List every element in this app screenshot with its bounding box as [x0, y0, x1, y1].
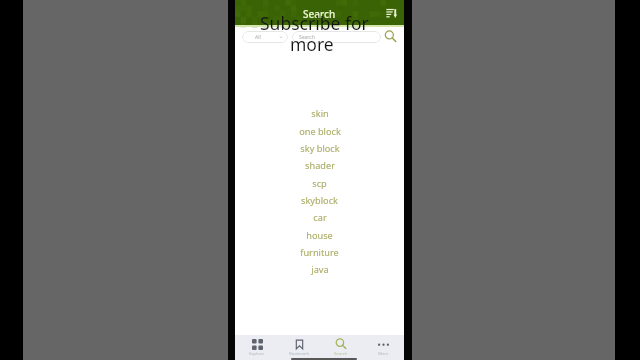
button[interactable]: Search — [320, 335, 362, 358]
staticText: more — [290, 32, 334, 56]
staticText: Explore — [249, 351, 264, 357]
staticText: java — [311, 263, 329, 276]
staticText: car — [313, 211, 327, 224]
staticText: More — [378, 351, 389, 357]
staticText: Bookmark — [289, 351, 310, 357]
staticText: house — [306, 229, 333, 242]
button[interactable]: Search — [292, 31, 381, 43]
button[interactable]: skin — [235, 105, 404, 122]
staticText: furniture — [300, 246, 339, 259]
button[interactable]: skyblock — [235, 192, 404, 209]
button[interactable]: Sort — [384, 6, 398, 20]
staticText: skyblock — [301, 194, 338, 207]
button[interactable]: car — [235, 209, 404, 226]
button[interactable]: sky block — [235, 140, 404, 157]
button[interactable]: Bookmark — [278, 335, 320, 358]
button[interactable]: java — [235, 261, 404, 278]
button[interactable]: scp — [235, 175, 404, 192]
staticText: scp — [312, 177, 327, 190]
button[interactable]: All — [242, 31, 288, 43]
staticText: sky block — [300, 142, 340, 155]
staticText: Subscribe for — [260, 11, 369, 35]
button[interactable]: one block — [235, 123, 404, 140]
button[interactable]: house — [235, 227, 404, 244]
button[interactable]: More — [362, 335, 404, 358]
staticText: skin — [311, 107, 329, 120]
button[interactable]: furniture — [235, 244, 404, 261]
staticText: shader — [305, 159, 335, 172]
button[interactable]: shader — [235, 157, 404, 174]
staticText: Search — [303, 7, 336, 21]
staticText: one block — [299, 125, 341, 138]
button[interactable]: Explore — [235, 335, 278, 358]
staticText: Search — [299, 34, 315, 41]
staticText: All — [255, 34, 261, 41]
button[interactable]: Search — [383, 29, 398, 44]
staticText: Search — [334, 351, 348, 357]
